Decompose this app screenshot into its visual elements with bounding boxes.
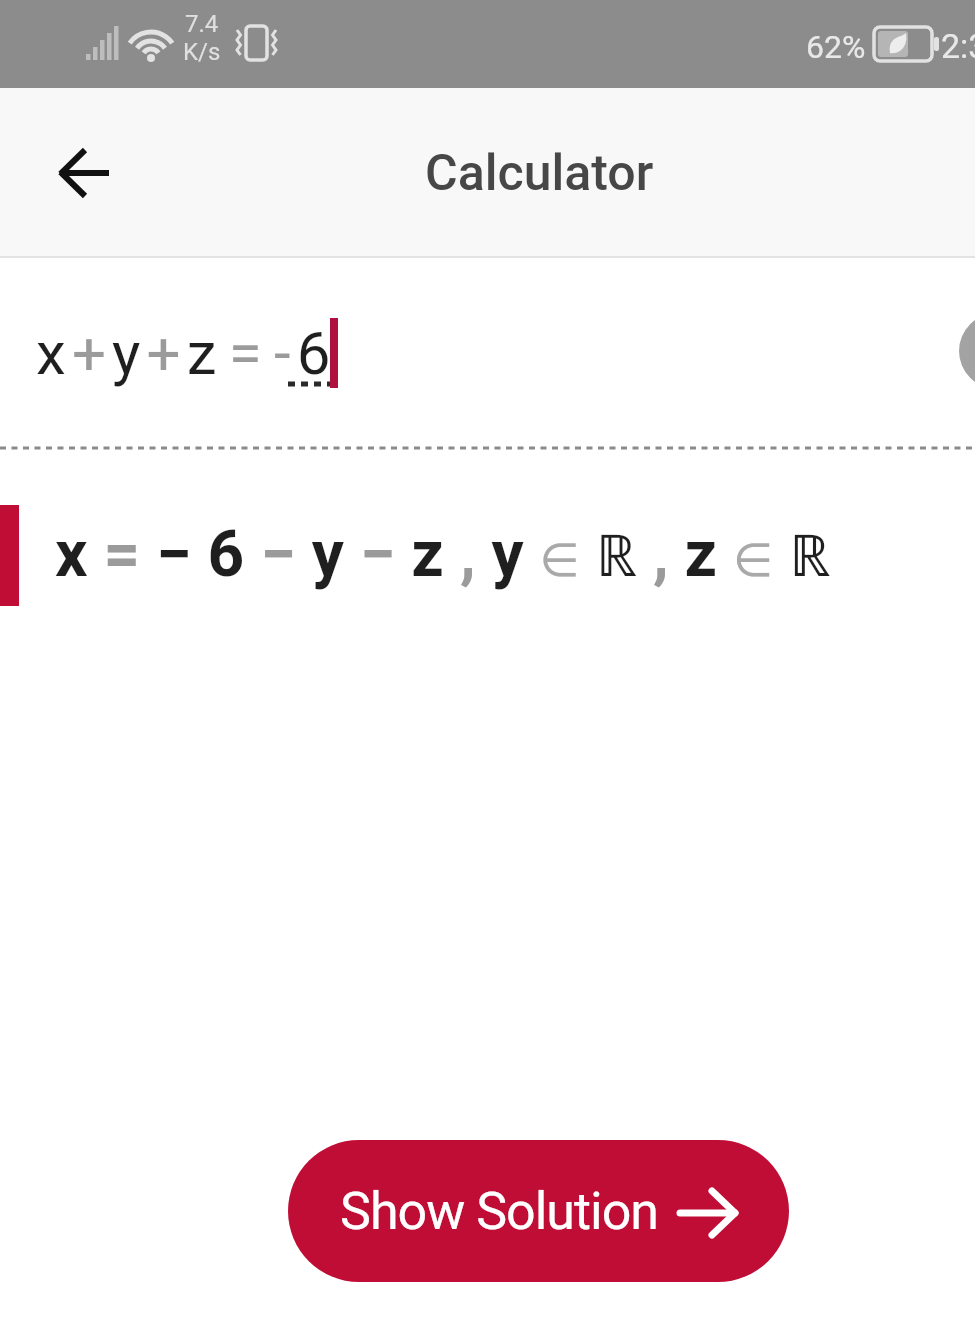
button[interactable]: Show Solution xyxy=(288,1140,789,1282)
staticText: 7.4 xyxy=(185,10,219,38)
staticText: x + y + z = - 6 xyxy=(36,318,331,388)
staticText: x = − 6 − y − z , y ∈ ℝ , z ∈ ℝ xyxy=(55,514,831,593)
button[interactable] xyxy=(959,313,975,389)
staticText: 62% xyxy=(806,28,866,66)
staticText: 2:3 xyxy=(941,26,975,66)
staticText: K/s xyxy=(183,38,221,66)
staticText: Show Solution xyxy=(340,1181,659,1242)
button[interactable] xyxy=(34,123,134,223)
staticText: Calculator xyxy=(425,144,654,203)
